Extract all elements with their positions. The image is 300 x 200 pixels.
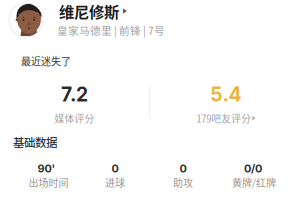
staticText: 最近迷失了 <box>21 54 71 68</box>
button[interactable]: 7.2 <box>54 83 94 125</box>
staticText: 皇家马德里 | 前锋 | 7号 <box>57 22 165 38</box>
button[interactable]: 维尼修斯 <box>59 0 127 22</box>
staticText: 5.4 <box>210 83 241 106</box>
staticText: 基础数据 <box>13 134 57 150</box>
staticText: 媒体评分 <box>54 111 94 125</box>
staticText: 黄牌/红牌 <box>232 175 276 190</box>
button[interactable]: 5.4 <box>196 83 256 125</box>
staticText: 进球 <box>105 175 125 190</box>
staticText: 出场时间 <box>28 175 68 190</box>
staticText: 0 <box>179 162 186 175</box>
staticText: 0/0 <box>244 162 262 175</box>
staticText: 7.2 <box>61 83 88 106</box>
staticText: 179吧友评分 <box>196 111 251 125</box>
staticText: 助攻 <box>173 175 193 190</box>
staticText: 维尼修斯 <box>59 0 119 22</box>
staticText: 0 <box>111 162 118 175</box>
staticText: 90' <box>37 162 55 175</box>
